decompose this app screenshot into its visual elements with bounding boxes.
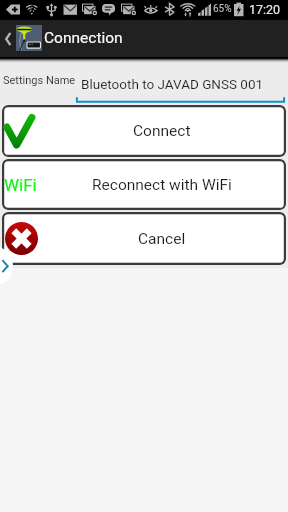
button[interactable]: Connect [2, 105, 286, 157]
staticText: Connect [133, 122, 191, 140]
button[interactable]: Navigate up [0, 20, 15, 57]
staticText: Reconnect with WiFi [92, 176, 232, 194]
button[interactable]: WiFi [2, 159, 286, 210]
staticText: WiFi [4, 175, 37, 195]
staticText: Cancel [138, 230, 186, 248]
staticText: Connection [44, 29, 123, 47]
staticText: Bluetooth to JAVAD GNSS 001 [81, 76, 264, 92]
staticText: 17:20 [249, 2, 281, 17]
button[interactable]: Cancel [2, 212, 286, 265]
button[interactable]: Open navigation drawer [0, 246, 13, 286]
staticText: Settings Name [3, 74, 76, 87]
staticText: 65% [213, 3, 232, 15]
